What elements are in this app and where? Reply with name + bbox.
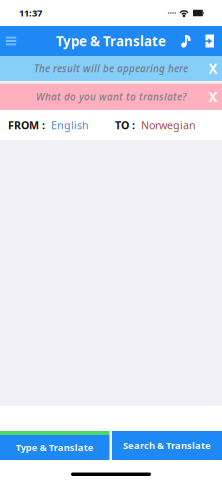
button[interactable]: Clear text — [205, 56, 221, 81]
button[interactable]: Speak — [176, 26, 196, 56]
staticText: TO : — [115, 118, 135, 132]
staticText: Type & Translate — [16, 441, 94, 454]
button[interactable]: Clear text — [205, 83, 221, 110]
staticText: 11:37 — [19, 7, 42, 19]
staticText: English — [45, 118, 89, 132]
staticText: X — [208, 88, 217, 106]
staticText: X — [208, 60, 217, 77]
button[interactable]: Search & Translate — [112, 431, 222, 460]
button[interactable]: Menu — [0, 26, 22, 56]
staticText: Norwegian — [135, 118, 196, 132]
staticText: FROM : — [8, 118, 45, 132]
staticText: Search & Translate — [123, 439, 211, 452]
button[interactable]: Type & Translate — [0, 431, 109, 460]
button[interactable]: Sign in — [196, 26, 218, 56]
button[interactable]: TO : — [111, 110, 222, 140]
button[interactable]: FROM : — [0, 110, 111, 140]
staticText: What do you want to translate? — [36, 90, 186, 103]
staticText: Type & Translate — [56, 32, 166, 50]
staticText: The result will be appearing here — [34, 62, 188, 75]
